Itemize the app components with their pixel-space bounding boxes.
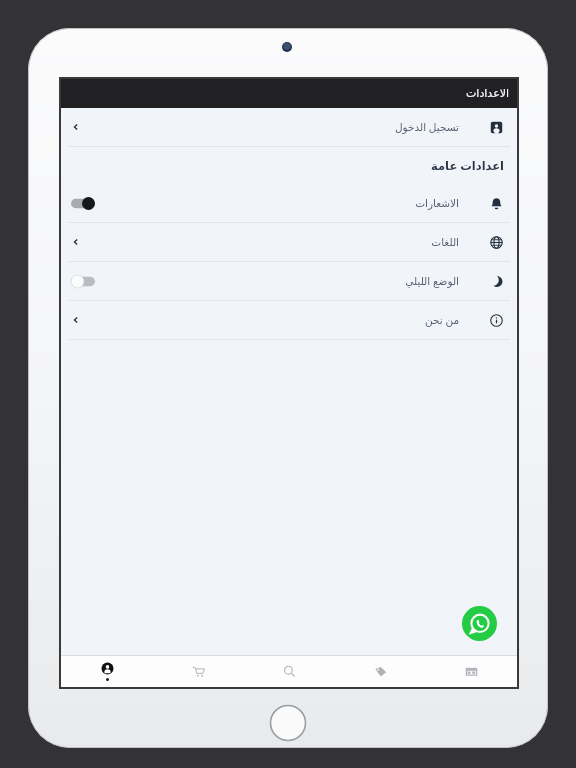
staticText: الاشعارات xyxy=(415,197,459,209)
staticText: من نحن xyxy=(424,313,459,327)
button[interactable]: Switch off xyxy=(61,262,517,300)
other: Open xyxy=(71,237,81,247)
button[interactable]: Open xyxy=(61,301,517,339)
staticText: الاعدادات xyxy=(466,87,510,100)
other: Open xyxy=(71,122,81,132)
button[interactable]: Open xyxy=(61,108,517,146)
button[interactable]: Switch off xyxy=(71,275,95,288)
other: Open xyxy=(71,315,81,325)
staticText: اعدادات عامة xyxy=(431,158,505,174)
button[interactable]: Offers xyxy=(335,656,426,687)
button[interactable]: Switch on xyxy=(71,197,95,210)
button[interactable]: WhatsApp xyxy=(462,606,497,641)
staticText: الوضع الليلي xyxy=(405,274,459,288)
button[interactable]: Switch on xyxy=(61,184,517,222)
button[interactable]: Open xyxy=(61,223,517,261)
button[interactable]: Account xyxy=(61,656,153,687)
button[interactable]: Search xyxy=(244,656,335,687)
staticText: اللغات xyxy=(431,236,459,248)
button[interactable]: Stores xyxy=(426,656,517,687)
button[interactable]: Cart xyxy=(153,656,244,687)
staticText: تسجيل الدخول xyxy=(394,120,459,134)
